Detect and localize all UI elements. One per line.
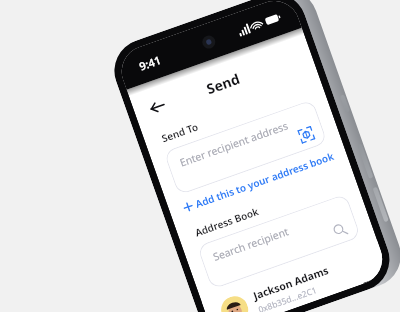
- button[interactable]: Search: [329, 219, 350, 240]
- staticText: Send: [204, 69, 243, 98]
- staticText: 0x8b35d...e2C1: [257, 284, 319, 312]
- staticText: Jackson Adams: [251, 263, 330, 303]
- staticText: 9:41: [137, 52, 163, 74]
- staticText: Search recipient: [211, 224, 291, 264]
- staticText: Send To: [160, 119, 200, 145]
- button[interactable]: Jackson Adams: [202, 240, 389, 312]
- button[interactable]: Back: [140, 90, 173, 123]
- button[interactable]: Add this to your address book: [182, 149, 336, 215]
- button[interactable]: Scan QR code: [293, 122, 318, 147]
- button[interactable]: Search recipient: [197, 193, 361, 290]
- staticText: Enter recipient address: [178, 118, 290, 170]
- staticText: Address Book: [193, 204, 261, 240]
- button[interactable]: Enter recipient address: [163, 99, 328, 195]
- staticText: Add this to your address book: [193, 149, 336, 211]
